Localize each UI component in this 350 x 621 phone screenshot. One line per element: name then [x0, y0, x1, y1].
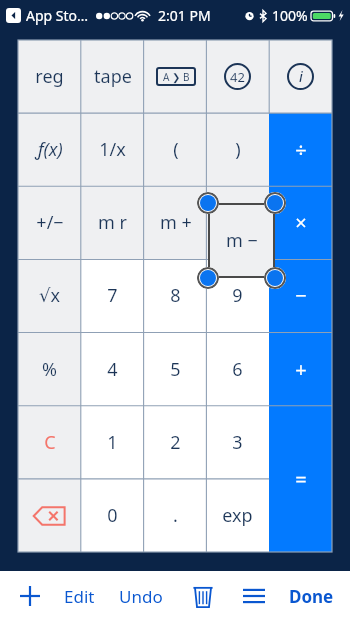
button[interactable]: 4 [81, 333, 144, 406]
button[interactable]: ÷ [269, 113, 332, 186]
staticText: Edit [64, 585, 95, 608]
button[interactable]: Undo [115, 577, 167, 616]
staticText: 1 [107, 430, 118, 455]
staticText: 4 [107, 357, 118, 382]
button[interactable]: Edit [60, 577, 99, 616]
button[interactable]: = [269, 406, 332, 552]
staticText: m − [226, 228, 258, 253]
staticText: m r [98, 210, 127, 235]
button[interactable]: √x [18, 259, 81, 332]
button[interactable]: i [269, 40, 332, 113]
staticText: 5 [170, 357, 181, 382]
staticText: ÷ [295, 136, 307, 163]
button[interactable]: 9 [206, 259, 269, 332]
button[interactable]: . [144, 479, 207, 552]
button[interactable]: + [269, 333, 332, 406]
staticText: tape [94, 64, 132, 89]
button[interactable]: Resize handle [200, 270, 216, 286]
button[interactable]: × [269, 186, 332, 259]
button[interactable]: 1/x [81, 113, 144, 186]
staticText: 1/x [99, 137, 126, 162]
button[interactable]: 6 [206, 333, 269, 406]
staticText: ( [173, 137, 179, 162]
button[interactable]: 1 [81, 406, 144, 479]
button[interactable]: 3 [206, 406, 269, 479]
staticText: A ❯ B [163, 70, 190, 84]
button[interactable]: m r [81, 186, 144, 259]
button[interactable]: ( [144, 113, 207, 186]
button[interactable]: tape [81, 40, 144, 113]
button[interactable]: A>B [144, 40, 207, 113]
staticText: C [44, 430, 56, 455]
button[interactable]: Resize handle [267, 270, 283, 286]
staticText: = [295, 466, 307, 493]
button[interactable]: 5 [144, 333, 207, 406]
staticText: √x [39, 283, 60, 308]
button[interactable]: 8 [144, 259, 207, 332]
staticText: − [295, 282, 307, 309]
staticText: m + [160, 210, 192, 235]
staticText: 42 [230, 68, 245, 86]
staticText: reg [35, 64, 64, 89]
staticText: exp [222, 503, 253, 528]
staticText: 0 [107, 503, 118, 528]
staticText: % [42, 357, 57, 382]
staticText: 2:01 PM [158, 6, 211, 25]
staticText: 6 [232, 357, 243, 382]
button[interactable]: ⌫ [18, 479, 81, 552]
button[interactable]: ƒ(x) [18, 113, 81, 186]
staticText: +/− [36, 210, 64, 235]
staticText: 7 [107, 283, 118, 308]
button[interactable]: m − [206, 186, 269, 259]
staticText: 100% [272, 6, 308, 25]
button[interactable]: ) [206, 113, 269, 186]
button[interactable]: reg [18, 40, 81, 113]
staticText: Undo [119, 585, 163, 608]
staticText: 8 [170, 283, 181, 308]
staticText: ) [235, 137, 241, 162]
button[interactable]: C [18, 406, 81, 479]
button[interactable]: Done [285, 577, 338, 616]
button[interactable]: exp [206, 479, 269, 552]
staticText: ƒ(x) [36, 137, 63, 162]
button[interactable]: Add [12, 578, 48, 614]
staticText: + [295, 356, 307, 383]
staticText: App Sto… [26, 6, 89, 25]
staticText: × [295, 209, 307, 236]
staticText: 9 [232, 283, 243, 308]
button[interactable]: +/− [18, 186, 81, 259]
staticText: . [173, 503, 178, 528]
button[interactable]: 42 [206, 40, 269, 113]
staticText: Done [289, 585, 334, 608]
button[interactable]: Delete [185, 578, 221, 614]
staticText: i [299, 67, 303, 86]
button[interactable]: Menu [237, 579, 271, 613]
button[interactable]: 0 [81, 479, 144, 552]
button[interactable]: % [18, 333, 81, 406]
button[interactable]: Resize handle [267, 195, 283, 211]
button[interactable]: 2 [144, 406, 207, 479]
button[interactable]: Resize handle [200, 195, 216, 211]
button[interactable]: − [269, 259, 332, 332]
button[interactable]: m + [144, 186, 207, 259]
button[interactable]: 7 [81, 259, 144, 332]
staticText: 3 [232, 430, 243, 455]
staticText: 2 [170, 430, 181, 455]
